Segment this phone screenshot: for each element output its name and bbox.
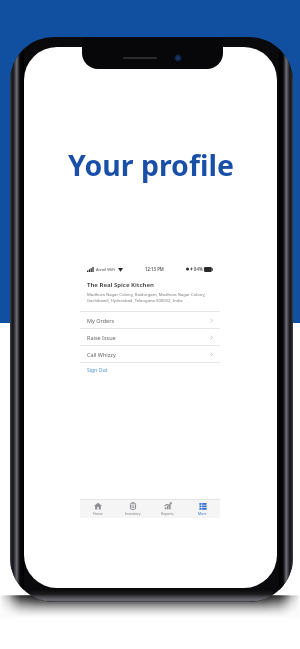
staticText: Madhura Nagar Colony, Raidurgam, Madhura… xyxy=(87,292,206,304)
staticText: Call Whizzy xyxy=(87,351,116,358)
staticText: Inventory xyxy=(125,511,141,516)
button[interactable]: Home xyxy=(80,499,115,518)
button[interactable]: Reports xyxy=(150,499,185,518)
staticText: Sign Out xyxy=(87,367,108,374)
staticText: Reports xyxy=(161,511,174,516)
button[interactable]: Raise Issue xyxy=(80,328,220,345)
button[interactable]: Sign Out xyxy=(80,363,115,378)
button[interactable]: Inventory xyxy=(115,499,150,518)
staticText: Home xyxy=(93,511,103,516)
button[interactable]: My Orders xyxy=(80,311,220,328)
staticText: 12:13 PM xyxy=(145,266,164,272)
staticText: 84% xyxy=(194,266,203,272)
staticText: The Real Spice Kitchen xyxy=(87,281,154,289)
staticText: Airtel WiFi xyxy=(96,267,116,272)
button[interactable]: Call Whizzy xyxy=(80,345,220,362)
staticText: My Orders xyxy=(87,317,115,324)
staticText: More xyxy=(198,511,207,516)
staticText: Your profile xyxy=(68,146,234,185)
button[interactable]: More xyxy=(185,499,220,518)
staticText: Raise Issue xyxy=(87,334,116,341)
